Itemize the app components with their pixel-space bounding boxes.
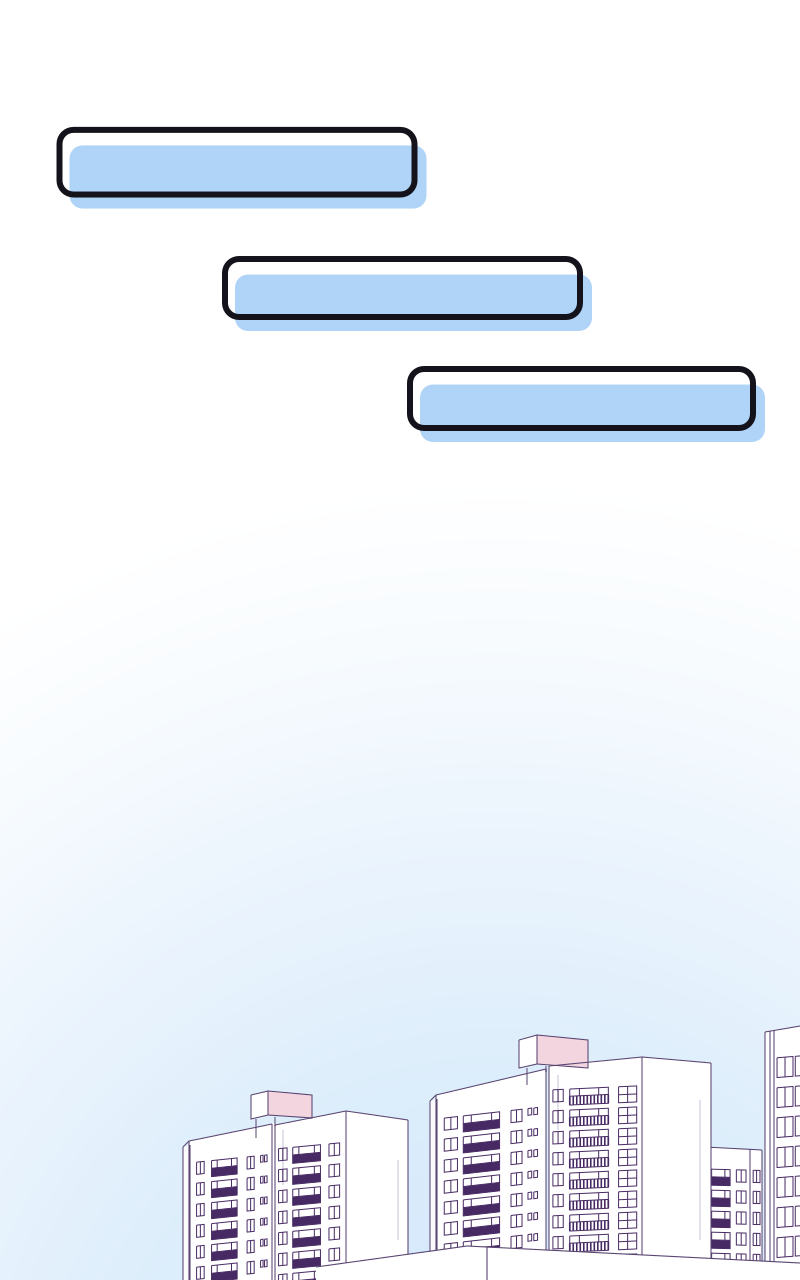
button[interactable]: Speech balloon, first line bbox=[0, 0, 800, 1280]
button[interactable]: Speech balloon, third line bbox=[0, 0, 800, 1280]
button[interactable]: Speech balloon, second line bbox=[0, 0, 800, 1280]
